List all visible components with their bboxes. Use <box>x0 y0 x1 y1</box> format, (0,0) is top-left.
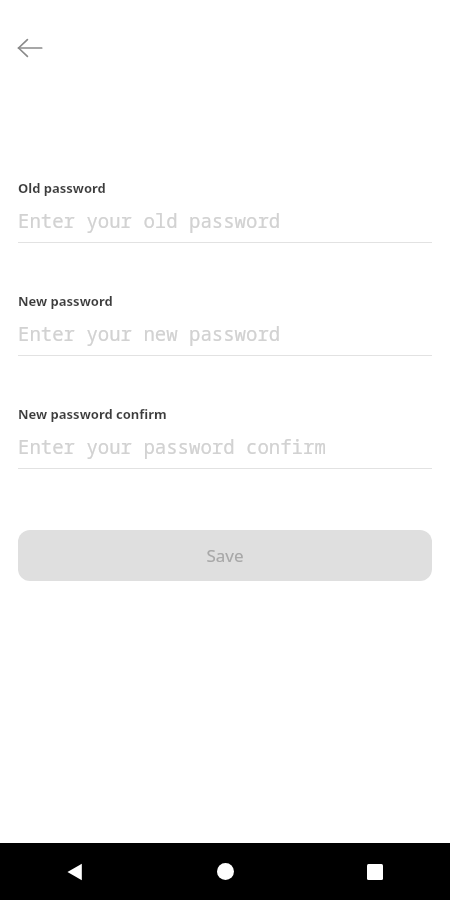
staticText: Old password <box>18 179 106 197</box>
button[interactable]: Save <box>18 530 432 581</box>
button[interactable]: New password <box>0 292 450 356</box>
staticText: Enter your new password <box>18 321 281 347</box>
button[interactable]: Old password <box>0 179 450 243</box>
staticText: Enter your old password <box>18 208 281 234</box>
button[interactable]: Back <box>0 843 150 900</box>
staticText: New password <box>18 292 113 310</box>
button[interactable]: New password confirm <box>0 405 450 469</box>
staticText: New password confirm <box>18 405 167 423</box>
button[interactable]: Back <box>8 26 52 70</box>
button[interactable]: Home <box>150 843 300 900</box>
button[interactable]: Recent apps <box>300 843 450 900</box>
staticText: Enter your password confirm <box>18 434 326 460</box>
staticText: Save <box>206 544 244 567</box>
